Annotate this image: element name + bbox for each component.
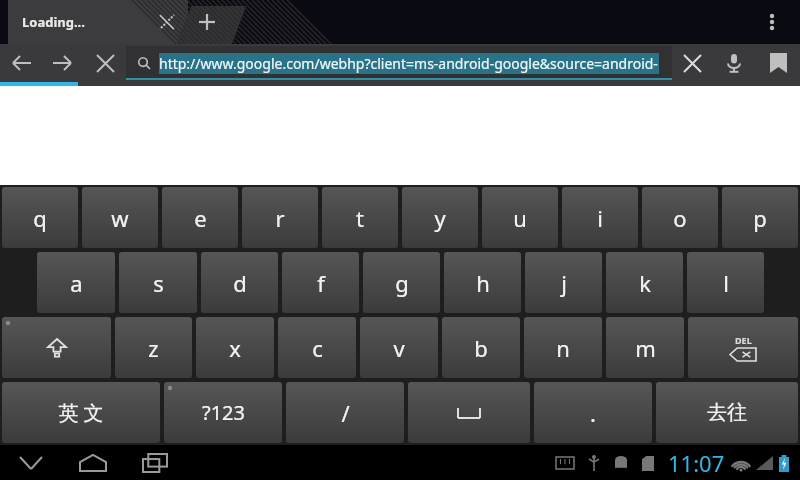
button[interactable]: w [82,187,158,248]
button[interactable]: b [442,317,520,378]
button[interactable]: y [402,187,478,248]
staticText: d [233,268,247,298]
staticText: c [312,333,323,363]
staticText: v [393,333,405,363]
staticText: x [229,333,241,363]
button[interactable]: Voice search [712,44,756,82]
button[interactable]: Loading... [8,0,188,44]
button[interactable]: j [525,252,602,313]
button[interactable]: Close tab [152,7,182,37]
button[interactable]: m [606,317,684,378]
staticText: h [476,268,490,298]
staticText: e [194,203,207,233]
button[interactable]: Recent apps [124,445,186,480]
staticText: u [513,203,527,233]
staticText: j [561,268,567,298]
button[interactable]: ?123 [164,382,282,443]
staticText: Loading... [22,13,85,31]
staticText: 英 文 [58,399,104,426]
button[interactable]: v [360,317,438,378]
button[interactable]: s [119,252,197,313]
button[interactable]: Back [0,445,62,480]
button[interactable]: r [242,187,318,248]
button[interactable]: e [162,187,238,248]
staticText: f [317,268,325,298]
staticText: DEL [735,334,752,346]
staticText: g [395,268,409,298]
staticText: q [33,203,47,233]
staticText: a [70,268,83,298]
button[interactable]: u [482,187,558,248]
button[interactable]: Bookmarks [756,44,800,82]
button[interactable]: l [687,252,764,313]
staticText: r [275,203,285,233]
button[interactable]: Stop loading [84,44,126,82]
staticText: k [639,268,651,298]
button[interactable]: Back [0,44,42,82]
button[interactable] [408,382,530,443]
button[interactable]: Home [62,445,124,480]
button[interactable]: DEL [688,317,798,378]
staticText: y [434,203,446,233]
button[interactable]: c [278,317,356,378]
button[interactable]: q [2,187,78,248]
staticText: / [341,398,350,428]
button[interactable]: 英 文 [2,382,160,443]
button[interactable] [2,317,111,378]
staticText: o [673,203,687,233]
button[interactable]: 去往 [656,382,798,443]
button[interactable]: t [322,187,398,248]
button[interactable]: Clear [672,44,712,82]
button[interactable]: g [363,252,440,313]
staticText: b [474,333,488,363]
button[interactable]: d [201,252,278,313]
staticText: z [148,333,159,363]
staticText: n [556,333,570,363]
button[interactable]: x [196,317,274,378]
button[interactable]: New tab [176,0,246,44]
staticText: t [356,203,364,233]
button[interactable]: http://www.google.com/webhp?client=ms-an… [126,46,672,80]
staticText: s [153,268,164,298]
staticText: p [753,203,767,233]
button[interactable]: k [606,252,683,313]
staticText: ?123 [202,399,245,426]
button[interactable]: i [562,187,638,248]
staticText: w [111,203,129,233]
staticText: http://www.google.com/webhp?client=ms-an… [159,54,659,73]
staticText: l [723,268,729,298]
button[interactable]: / [286,382,404,443]
button[interactable]: a [37,252,115,313]
staticText: . [590,398,596,428]
button[interactable]: o [642,187,718,248]
button[interactable]: z [115,317,192,378]
button[interactable]: n [524,317,602,378]
button[interactable]: f [282,252,359,313]
button[interactable]: More options [754,4,790,40]
button[interactable]: . [534,382,652,443]
staticText: 11:07 [668,448,725,478]
button[interactable]: h [444,252,521,313]
button[interactable]: p [722,187,798,248]
staticText: m [635,333,656,363]
staticText: 去往 [707,400,747,425]
button[interactable]: Forward [42,44,84,82]
staticText: i [597,203,603,233]
